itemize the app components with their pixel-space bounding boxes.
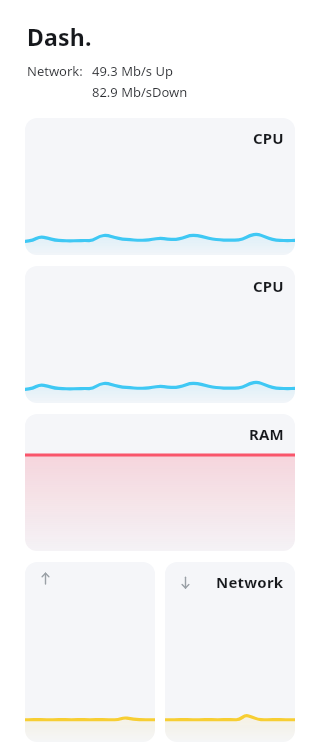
staticText: Network: [27, 62, 83, 80]
button[interactable]: Upload [25, 562, 155, 742]
button[interactable]: RAM [25, 414, 295, 551]
button[interactable]: Download [165, 562, 295, 742]
button[interactable]: CPU [25, 266, 295, 403]
staticText: CPU [253, 276, 284, 296]
other: Upload [39, 572, 52, 585]
staticText: Dash. [27, 21, 92, 52]
staticText: Network [216, 572, 284, 592]
staticText: 82.9 Mb/sDown [92, 83, 188, 101]
staticText: 49.3 Mb/s Up [92, 62, 173, 80]
staticText: CPU [253, 128, 284, 148]
staticText: RAM [249, 424, 284, 444]
other: Download [179, 576, 192, 589]
button[interactable]: CPU [25, 118, 295, 255]
